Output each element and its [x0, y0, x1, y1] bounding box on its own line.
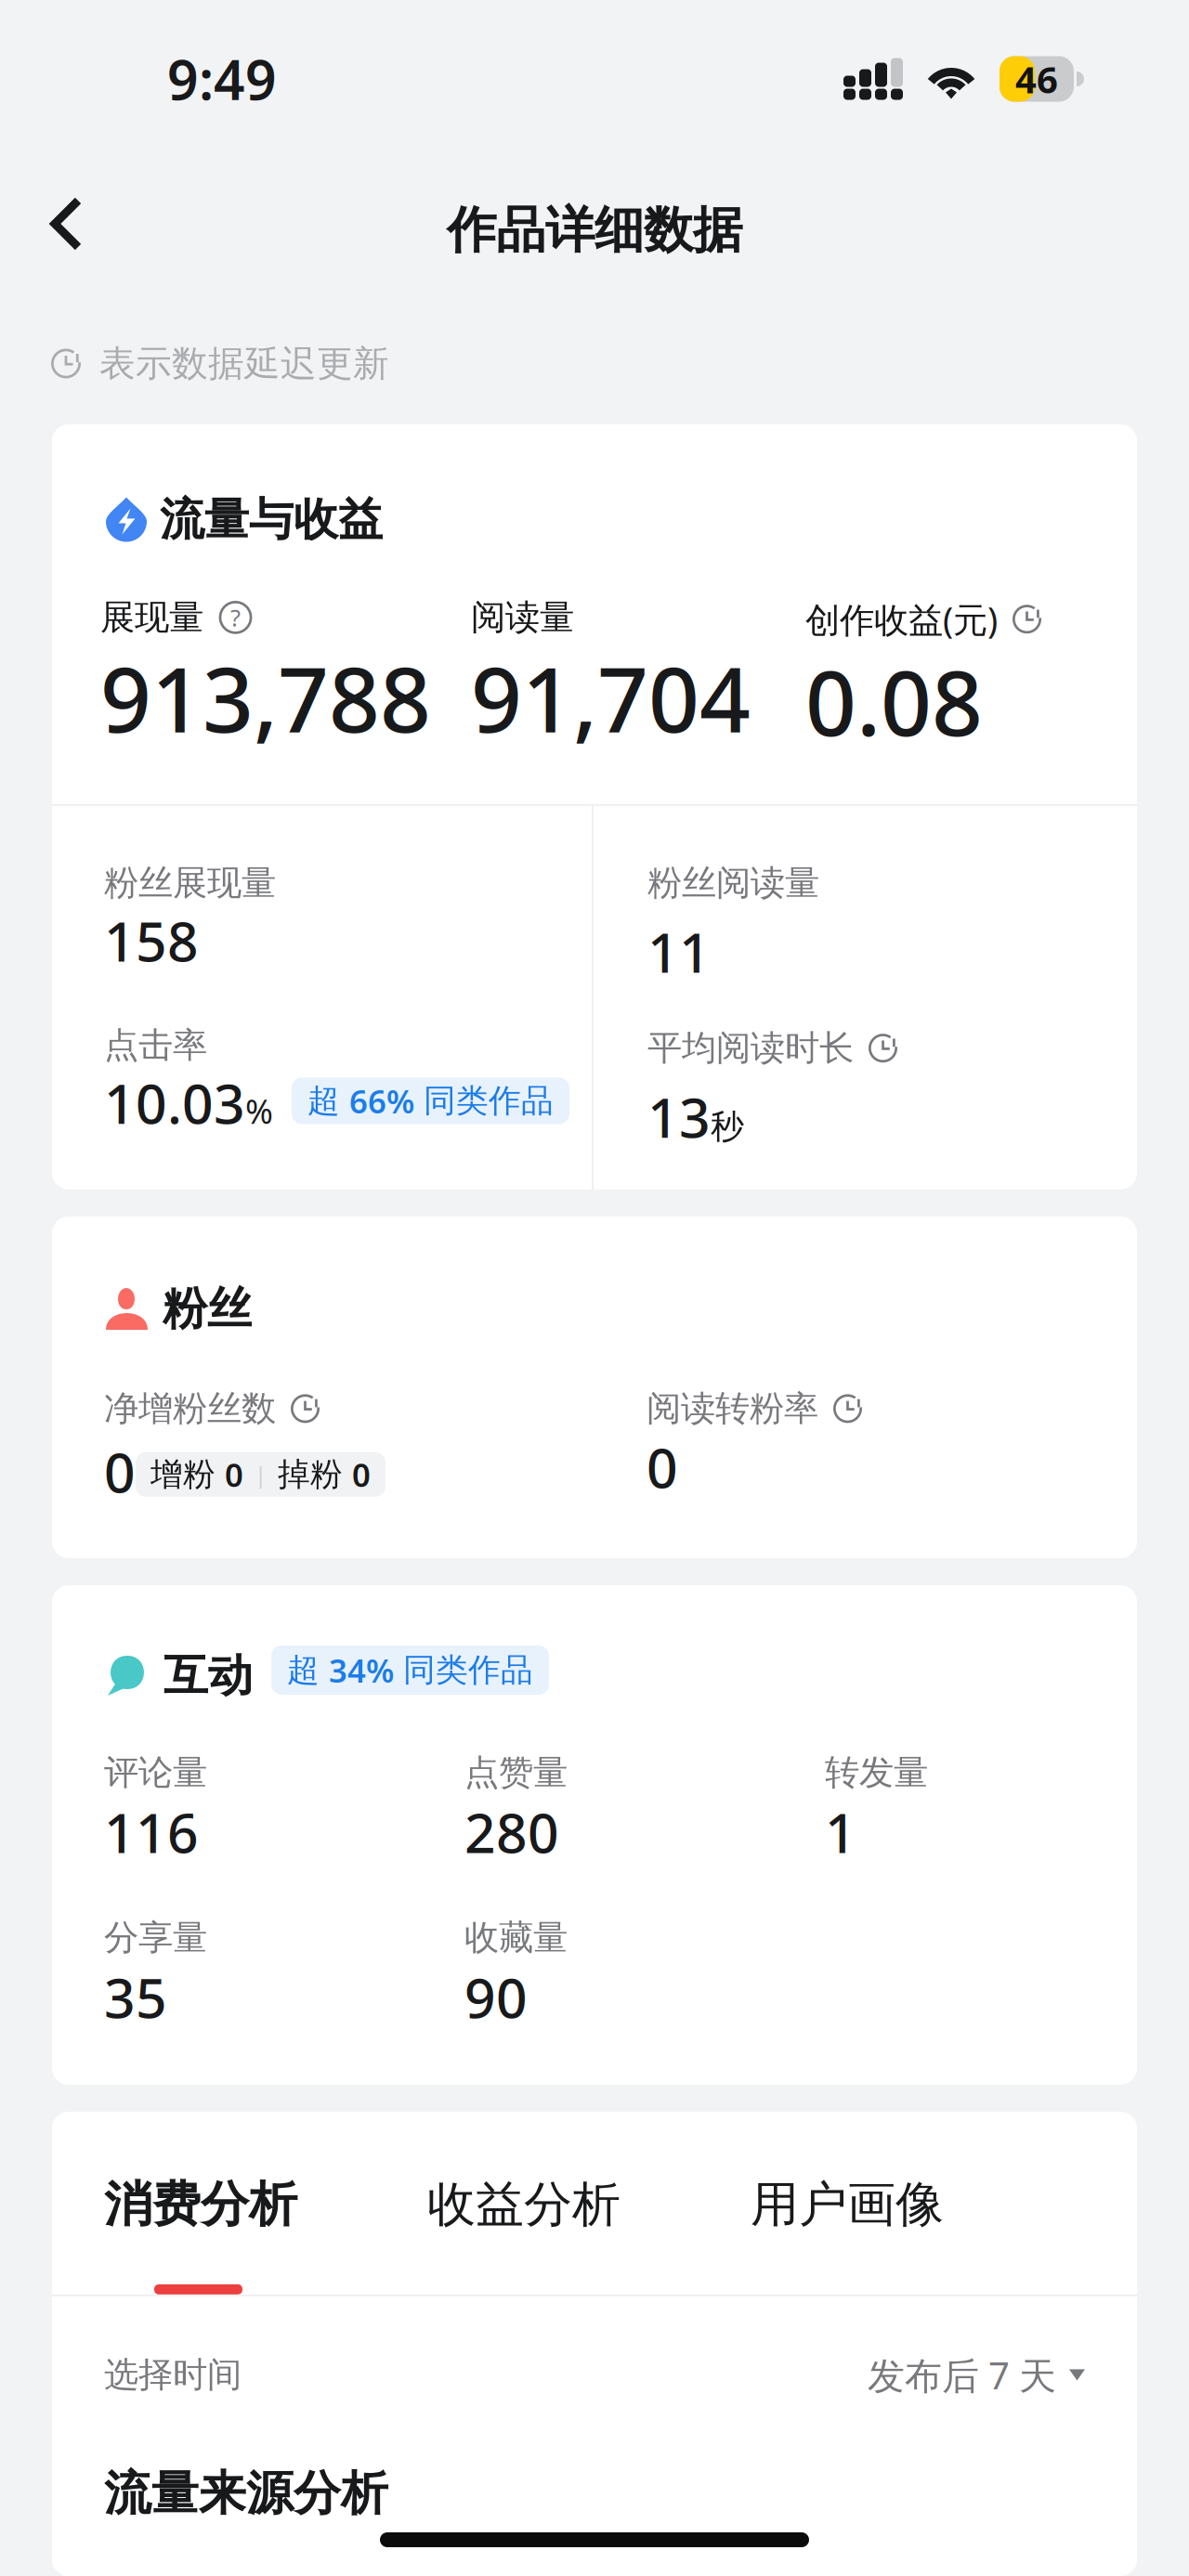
staticText: 阅读转粉率 — [647, 1387, 818, 1430]
staticText: 收藏量 — [464, 1916, 568, 1959]
staticText: 净增粉丝数 — [104, 1387, 276, 1430]
staticText: 粉丝阅读量 — [647, 862, 819, 904]
staticText: 转发量 — [825, 1751, 928, 1794]
staticText: 收益分析 — [427, 2175, 621, 2234]
staticText: 9:49 — [167, 43, 277, 115]
staticText: 消费分析 — [104, 2175, 297, 2234]
button[interactable]: 发布后 7 天 — [868, 2350, 1085, 2400]
staticText: 流量来源分析 — [104, 2465, 388, 2522]
staticText: 913,788 — [100, 639, 431, 757]
staticText: 增粉 — [150, 1455, 225, 1494]
staticText: 0 — [647, 1431, 678, 1503]
button[interactable]: 消费分析 — [104, 2112, 427, 2295]
staticText: ? — [230, 602, 241, 633]
staticText: 秒 — [711, 1106, 744, 1147]
staticText: 创作收益(元) — [805, 596, 998, 642]
staticText: 280 — [464, 1796, 559, 1868]
staticText: 作品详细数据 — [447, 200, 742, 261]
staticText: 13 — [647, 1081, 711, 1153]
staticText: 116 — [104, 1796, 199, 1868]
staticText: 超 — [287, 1650, 329, 1690]
staticText: 点击率 — [104, 1024, 207, 1067]
staticText: 46 — [1015, 54, 1058, 104]
staticText: 90 — [464, 1961, 528, 2033]
staticText: 点赞量 — [464, 1751, 568, 1794]
staticText: 0 — [104, 1435, 136, 1508]
staticText: 0.08 — [805, 642, 983, 761]
staticText: 分享量 — [104, 1916, 207, 1959]
staticText: 超 — [307, 1081, 349, 1121]
staticText: 选择时间 — [104, 2354, 242, 2396]
button[interactable]: 用户画像 — [751, 2112, 944, 2234]
staticText: 用户画像 — [751, 2175, 944, 2234]
staticText: 158 — [104, 904, 199, 977]
staticText: 粉丝 — [163, 1281, 252, 1336]
staticText: 同类作品 — [394, 1650, 533, 1690]
staticText: 0 — [225, 1453, 243, 1496]
staticText: 粉丝展现量 — [104, 862, 276, 904]
staticText: 11 — [647, 916, 711, 988]
staticText: 10.03 — [104, 1067, 245, 1139]
staticText: 阅读量 — [471, 596, 574, 639]
staticText: 91,704 — [471, 639, 751, 757]
staticText: 0 — [352, 1453, 371, 1496]
staticText: 发布后 7 天 — [868, 2350, 1056, 2400]
staticText: 互动 — [163, 1648, 253, 1703]
staticText: 66% — [349, 1080, 414, 1122]
staticText: 流量与收益 — [160, 492, 383, 547]
staticText: 同类作品 — [414, 1081, 554, 1121]
button[interactable]: 返回 — [16, 173, 108, 288]
staticText: 掉粉 — [278, 1455, 352, 1494]
staticText: % — [245, 1089, 273, 1133]
staticText: 评论量 — [104, 1751, 207, 1794]
staticText: 平均阅读时长 — [647, 1027, 854, 1069]
staticText: | — [243, 1460, 278, 1489]
button[interactable]: 收益分析 — [427, 2112, 751, 2234]
staticText: 34% — [329, 1649, 394, 1691]
staticText: 35 — [104, 1961, 167, 2033]
staticText: 表示数据延迟更新 — [99, 342, 389, 386]
staticText: 展现量 — [100, 596, 203, 639]
staticText: 1 — [825, 1796, 856, 1868]
